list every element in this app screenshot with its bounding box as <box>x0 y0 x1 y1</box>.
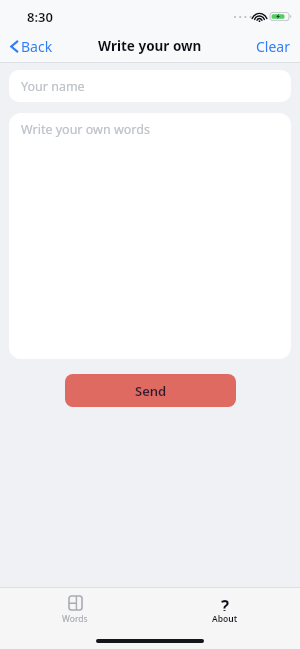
button[interactable]: Your name <box>9 70 291 102</box>
button[interactable]: Clear <box>254 34 292 59</box>
button[interactable]: Back <box>8 34 55 59</box>
button[interactable]: About <box>198 593 252 627</box>
button[interactable]: Write your own words <box>9 113 291 359</box>
staticText: Your name <box>21 78 85 95</box>
staticText: Write your own <box>98 37 202 55</box>
staticText: Send <box>135 382 167 400</box>
staticText: About <box>212 613 238 625</box>
button[interactable]: Send <box>65 374 236 407</box>
staticText: 8:30 <box>27 8 53 26</box>
staticText: Back <box>21 37 53 56</box>
staticText: ? <box>221 595 230 611</box>
button[interactable]: Words <box>48 593 102 627</box>
staticText: Write your own words <box>21 121 150 138</box>
staticText: Words <box>62 613 88 625</box>
staticText: Clear <box>256 37 290 56</box>
